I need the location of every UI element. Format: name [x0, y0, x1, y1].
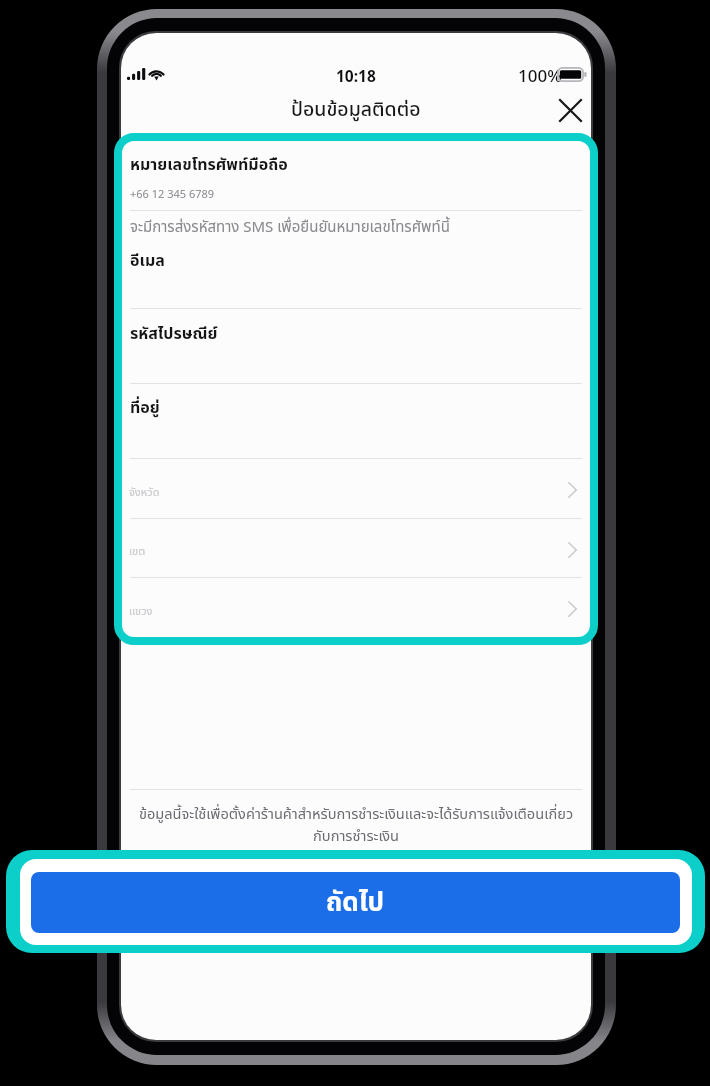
- button[interactable]: ถัดไป: [31, 872, 680, 933]
- staticText: เขต: [129, 543, 146, 560]
- staticText: 10:18: [336, 65, 376, 86]
- staticText: ป้อนข้อมูลติดต่อ: [291, 95, 421, 124]
- staticText: ข้อมูลนี้จะใช้เพื่อตั้งค่าร้านค้าสำหรับก…: [137, 804, 575, 848]
- staticText: รหัสไปรษณีย์: [130, 322, 218, 346]
- staticText: จะมีการส่งรหัสทาง SMS เพื่อยืนยันหมายเลข…: [130, 216, 450, 239]
- staticText: 100%: [518, 64, 562, 87]
- staticText: ที่อยู่: [130, 396, 160, 420]
- staticText: แขวง: [129, 603, 153, 620]
- staticText: จังหวัด: [129, 484, 160, 501]
- staticText: หมายเลขโทรศัพท์มือถือ: [130, 153, 288, 177]
- button[interactable]: เขต: [121, 518, 591, 577]
- button[interactable]: Close: [550, 91, 590, 129]
- button[interactable]: จังหวัด: [121, 458, 591, 518]
- staticText: ถัดไป: [326, 883, 385, 922]
- staticText: +66 12 345 6789: [130, 186, 215, 201]
- button[interactable]: แขวง: [121, 577, 591, 637]
- staticText: อีเมล: [130, 249, 165, 273]
